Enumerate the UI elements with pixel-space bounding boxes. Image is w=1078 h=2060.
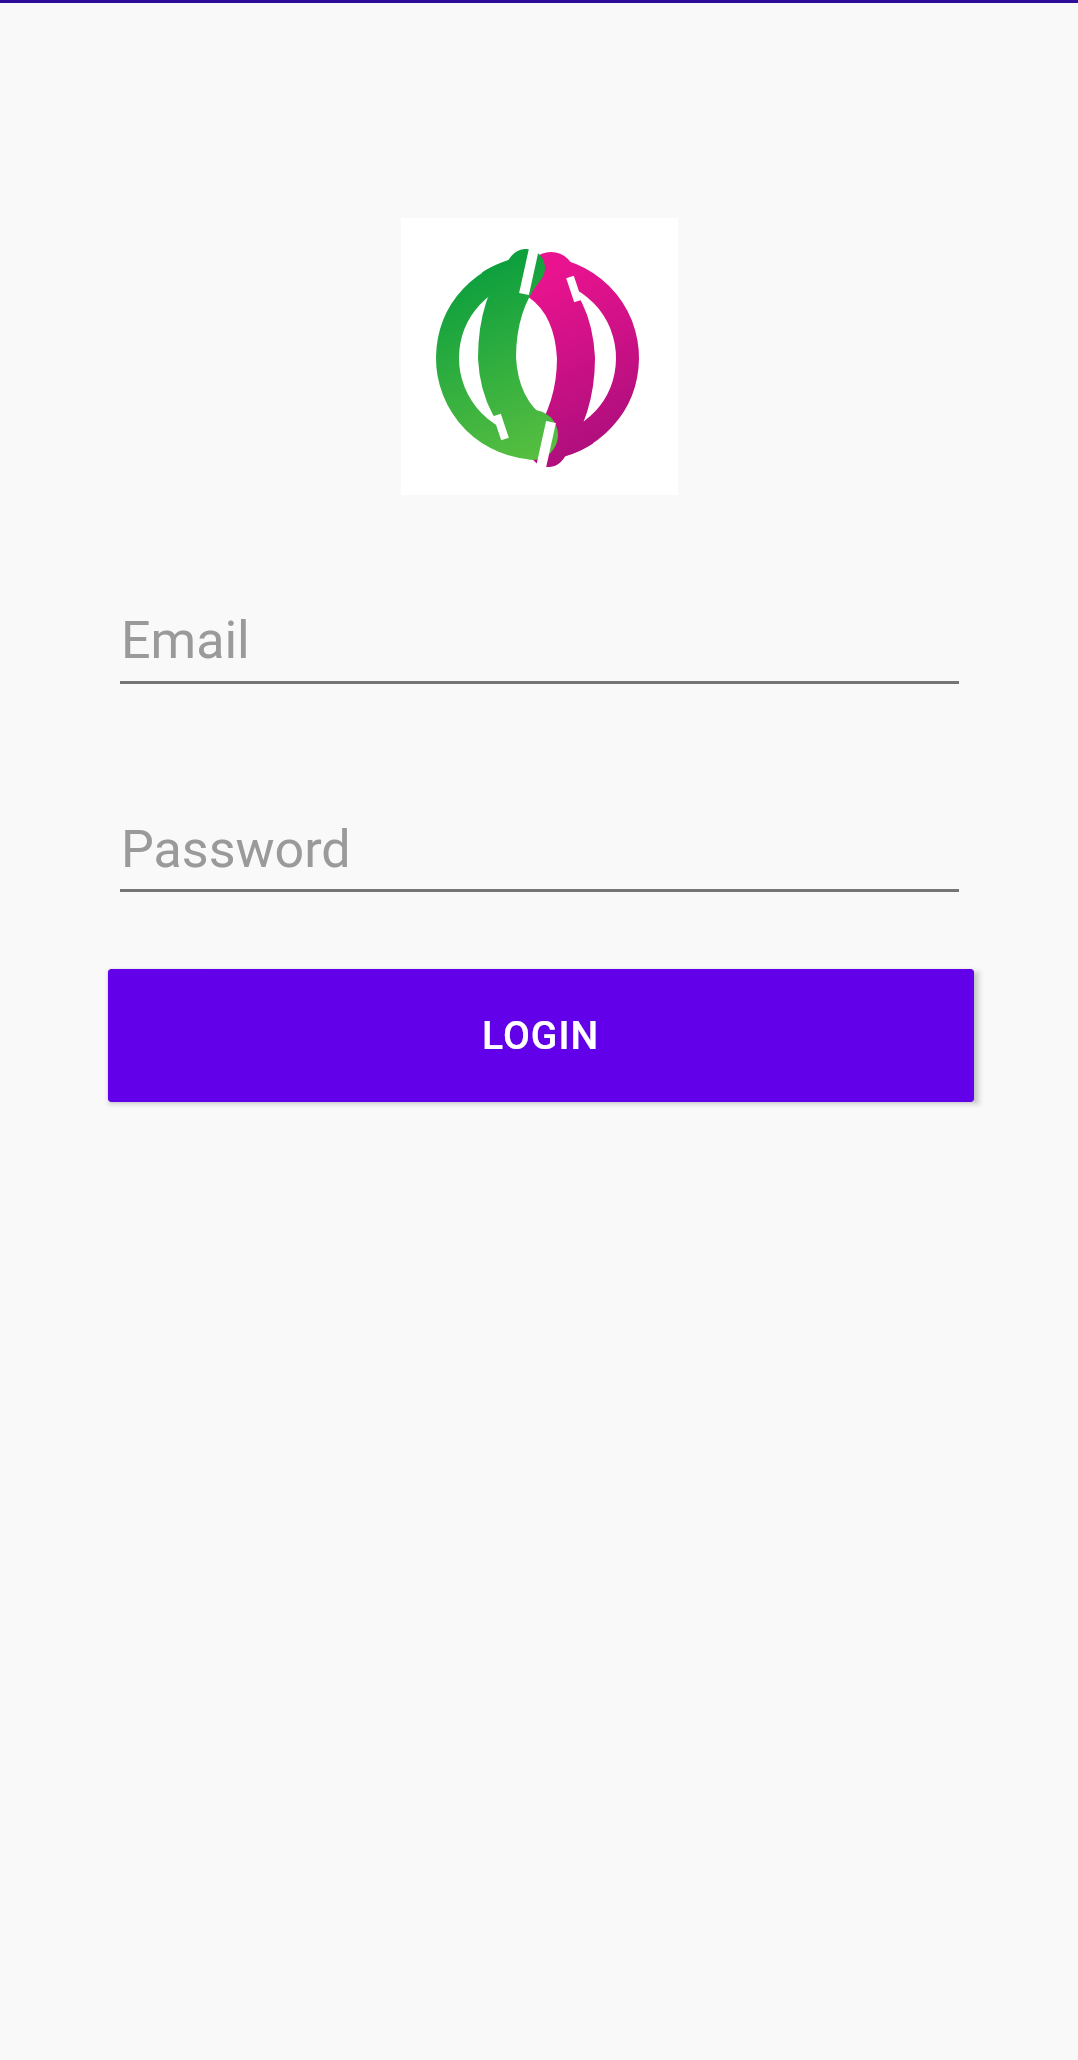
button[interactable]: Password [120, 808, 959, 892]
staticText: Password [121, 819, 351, 880]
staticText: LOGIN [482, 1013, 600, 1059]
staticText: Email [121, 610, 250, 671]
button[interactable]: Email [120, 600, 959, 684]
button[interactable]: LOGIN [108, 969, 974, 1102]
